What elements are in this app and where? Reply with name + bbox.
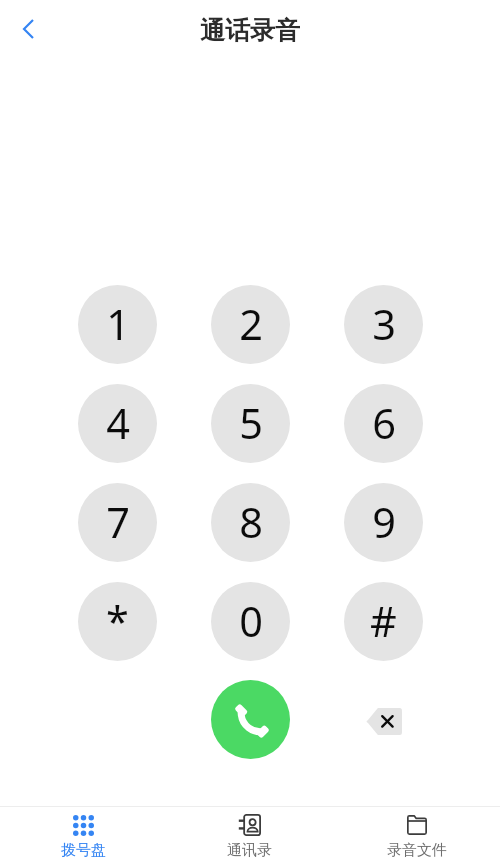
staticText: 4 <box>106 395 130 452</box>
staticText: 9 <box>372 494 396 551</box>
staticText: 6 <box>372 395 396 452</box>
staticText: # <box>370 593 397 650</box>
button[interactable]: 通讯录 <box>166 807 333 867</box>
button[interactable]: 1 <box>78 285 157 364</box>
staticText: 通讯录 <box>227 841 272 860</box>
button[interactable]: # <box>344 582 423 661</box>
button[interactable]: 8 <box>211 483 290 562</box>
button[interactable]: 录音文件 <box>333 807 500 867</box>
staticText: 录音文件 <box>387 841 447 860</box>
button[interactable]: * <box>78 582 157 661</box>
staticText: 1 <box>106 296 130 353</box>
staticText: 通话录音 <box>200 15 300 46</box>
staticText: * <box>106 593 129 650</box>
button[interactable]: 6 <box>344 384 423 463</box>
staticText: 2 <box>239 296 263 353</box>
staticText: 3 <box>372 296 396 353</box>
button[interactable]: 3 <box>344 285 423 364</box>
button[interactable]: 7 <box>78 483 157 562</box>
button[interactable]: 9 <box>344 483 423 562</box>
staticText: 8 <box>239 494 263 551</box>
button[interactable]: 拨号盘 <box>0 807 166 867</box>
staticText: 拨号盘 <box>61 841 106 860</box>
button[interactable]: Back <box>0 1 56 57</box>
staticText: 5 <box>239 395 263 452</box>
staticText: 7 <box>106 494 130 551</box>
button[interactable]: 0 <box>211 582 290 661</box>
staticText: 0 <box>239 593 263 650</box>
button[interactable]: Backspace <box>356 694 411 749</box>
button[interactable]: 4 <box>78 384 157 463</box>
button[interactable]: 5 <box>211 384 290 463</box>
button[interactable]: Call <box>211 680 290 759</box>
button[interactable]: 2 <box>211 285 290 364</box>
